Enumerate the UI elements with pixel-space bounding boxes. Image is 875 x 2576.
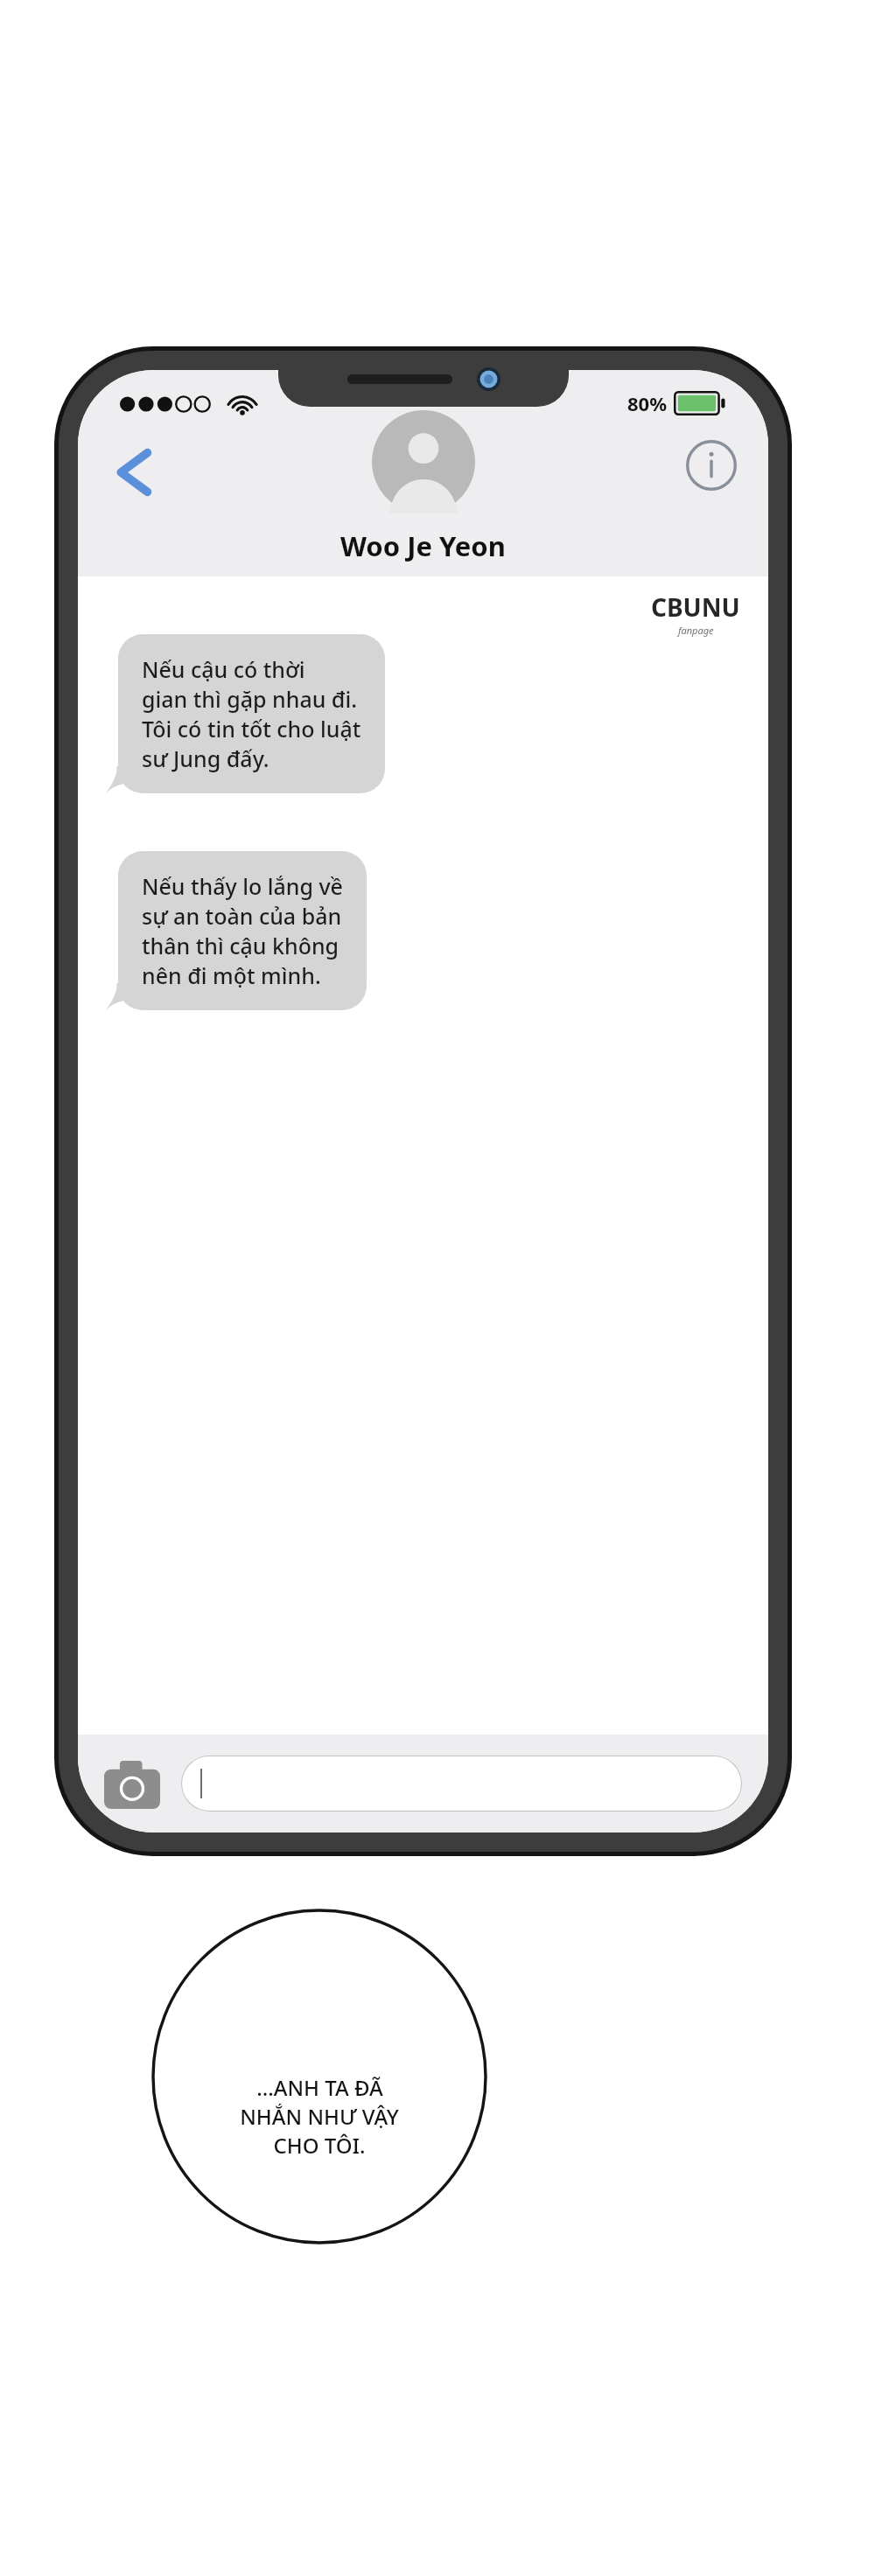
staticText: sư Jung đấy. [142, 743, 269, 773]
button[interactable]: Back [106, 443, 164, 501]
button[interactable]: Nếu cậu có thời [118, 634, 385, 793]
button[interactable]: Camera [104, 1758, 160, 1809]
staticText: Woo Je Yeon [340, 527, 506, 564]
staticText: sự an toàn của bản [142, 901, 342, 931]
staticText: gian thì gặp nhau đi. [142, 684, 358, 714]
staticText: Nếu cậu có thời [142, 654, 305, 684]
staticText: thân thì cậu không [142, 931, 339, 960]
staticText: NHẮN NHƯ VẬY [240, 2102, 399, 2131]
staticText: 80% [627, 390, 668, 416]
staticText: fanpage [678, 624, 714, 637]
button[interactable] [181, 1756, 742, 1812]
button[interactable]: Contact avatar [372, 410, 475, 513]
button[interactable]: Nếu thấy lo lắng về [118, 851, 367, 1010]
staticText: ...ANH TA ĐÃ [256, 2073, 383, 2102]
staticText: Nếu thấy lo lắng về [142, 871, 343, 901]
staticText: Tôi có tin tốt cho luật [142, 714, 361, 743]
staticText: CBUNU [651, 590, 740, 624]
staticText: CHO TÔI. [273, 2131, 366, 2160]
button[interactable]: Info [686, 440, 737, 491]
staticText: nên đi một mình. [142, 960, 321, 990]
